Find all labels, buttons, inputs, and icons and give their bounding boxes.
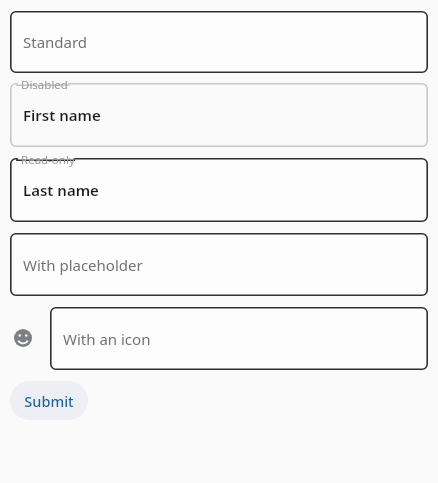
button[interactable]: Read-only [10,158,428,222]
button[interactable]: Submit [10,381,88,420]
staticText: First name [23,105,101,125]
button[interactable]: Standard [10,11,428,73]
staticText: With an icon [63,329,151,349]
other: Mood [14,329,32,347]
staticText: Last name [23,180,99,200]
staticText: Disabled [21,77,68,93]
staticText: Standard [23,32,88,52]
button[interactable]: With placeholder [10,233,428,296]
button[interactable]: Disabled [10,83,428,147]
staticText: With placeholder [23,255,143,275]
staticText: Read-only [21,152,75,168]
button[interactable]: With an icon [50,307,428,370]
staticText: Submit [24,391,74,411]
